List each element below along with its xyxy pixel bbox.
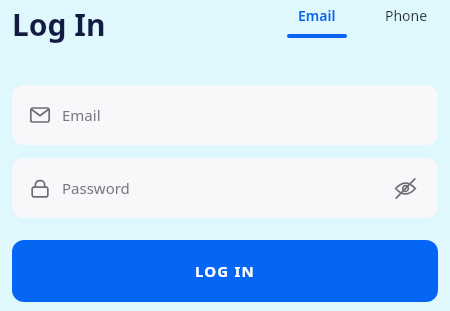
button[interactable]: Email <box>12 85 438 145</box>
staticText: Password <box>62 178 390 198</box>
button[interactable]: LOG IN <box>12 240 438 302</box>
staticText: Email <box>298 6 336 25</box>
staticText: Phone <box>385 6 428 25</box>
button[interactable]: Show password <box>390 173 420 203</box>
staticText: Log In <box>12 4 106 45</box>
button[interactable]: Phone <box>379 6 434 25</box>
staticText: LOG IN <box>195 261 255 281</box>
button[interactable]: Email <box>281 6 353 38</box>
staticText: Email <box>62 105 420 125</box>
button[interactable]: Password <box>12 158 438 218</box>
